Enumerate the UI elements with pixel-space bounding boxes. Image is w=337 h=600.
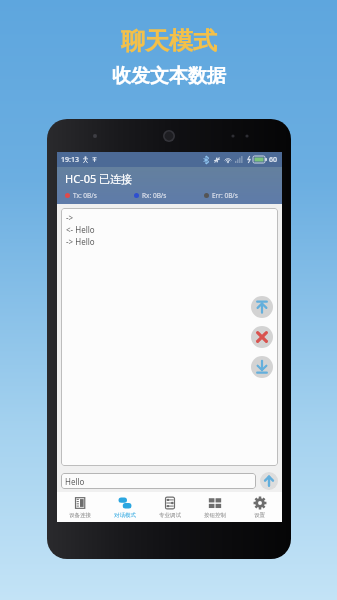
staticText: 60 (269, 155, 278, 165)
staticText: 聊天模式 (121, 26, 217, 56)
button[interactable]: Scroll to top (251, 296, 273, 318)
button[interactable]: 专业调试 (147, 492, 192, 522)
staticText: 设置 (254, 512, 265, 519)
staticText: Err: 0B/s (212, 191, 238, 200)
button[interactable]: Hello (61, 473, 256, 489)
button[interactable]: Clear (251, 326, 273, 348)
staticText: Hello (65, 476, 85, 487)
staticText: <- Hello (66, 224, 95, 235)
staticText: 按钮控制 (204, 512, 226, 519)
staticText: 19:13 (61, 155, 79, 165)
staticText: HC-05 已连接 (65, 171, 133, 186)
staticText: 收发文本数据 (112, 64, 226, 88)
button[interactable]: 按钮控制 (192, 492, 237, 522)
staticText: Rx: 0B/s (142, 191, 167, 200)
staticText: -> (66, 212, 74, 223)
button[interactable]: 设置 (237, 492, 282, 522)
staticText: 专业调试 (159, 512, 181, 519)
button[interactable]: Scroll to bottom (251, 356, 273, 378)
button[interactable]: -> (61, 208, 278, 466)
button[interactable]: 设备连接 (57, 492, 102, 522)
staticText: Tx: 0B/s (73, 191, 97, 200)
staticText: 对话模式 (114, 512, 136, 519)
staticText: -> Hello (66, 236, 95, 247)
button[interactable]: HC-05 已连接 (57, 167, 282, 189)
button[interactable]: 对话模式 (102, 492, 147, 522)
button[interactable]: Send (260, 472, 278, 490)
staticText: 设备连接 (69, 512, 91, 519)
